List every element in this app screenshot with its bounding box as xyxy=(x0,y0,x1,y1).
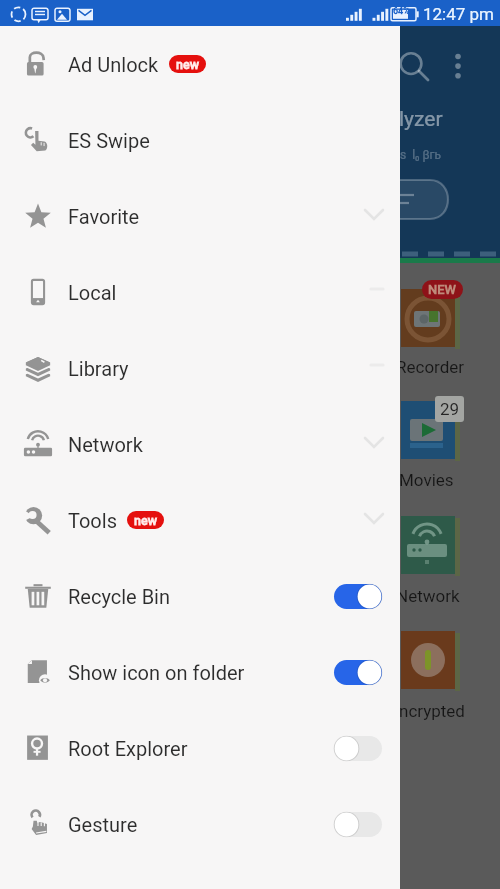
staticText: Show icon on folder xyxy=(68,661,245,684)
staticText: 12:47 pm xyxy=(423,4,495,24)
staticText: new xyxy=(134,513,157,528)
button[interactable]: Network xyxy=(0,406,400,482)
button[interactable]: ES Swipe xyxy=(0,102,400,178)
button[interactable]: Recycle Bin xyxy=(0,558,400,634)
button[interactable]: Root Explorer xyxy=(0,710,400,786)
staticText: Ad Unlock xyxy=(68,53,159,76)
staticText: 64% xyxy=(393,6,410,17)
button[interactable]: Show icon on folder xyxy=(0,634,400,710)
button[interactable]: Tools xyxy=(0,482,400,558)
button[interactable]: Folder xyxy=(401,516,465,580)
staticText: lyzer xyxy=(399,107,443,132)
staticText: Recycle Bin xyxy=(68,585,171,608)
staticText: ncrypted xyxy=(399,701,465,721)
button[interactable]: Ad Unlock xyxy=(0,26,400,102)
button[interactable]: Folder xyxy=(401,289,465,353)
button[interactable]: Favorite xyxy=(0,178,400,254)
staticText: NEW xyxy=(428,282,457,297)
button[interactable]: Gesture xyxy=(334,812,382,837)
button[interactable]: Search xyxy=(396,46,432,82)
staticText: new xyxy=(176,57,199,72)
staticText: Local xyxy=(68,281,117,304)
staticText: Library xyxy=(68,357,129,380)
button[interactable]: Root Explorer xyxy=(334,736,382,761)
button[interactable]: Library xyxy=(0,330,400,406)
button[interactable]: More options xyxy=(444,46,474,84)
staticText: Movies xyxy=(399,470,454,490)
staticText: Tools xyxy=(68,509,117,532)
staticText: Network xyxy=(396,586,460,606)
staticText: Recorder xyxy=(396,357,465,377)
staticText: Gesture xyxy=(68,813,138,836)
staticText: 29 xyxy=(440,399,460,419)
staticText: ES Swipe xyxy=(68,129,150,152)
button[interactable]: Folder xyxy=(401,401,465,465)
staticText: Favorite xyxy=(68,205,140,228)
button[interactable]: Folder xyxy=(401,631,465,695)
staticText: Root Explorer xyxy=(68,737,188,760)
button[interactable]: Gesture xyxy=(0,786,400,862)
button[interactable]: Recycle Bin xyxy=(334,584,382,609)
staticText: s l₀ βгь xyxy=(400,148,442,162)
button[interactable]: Local xyxy=(0,254,400,330)
button[interactable]: Show icon on folder xyxy=(334,660,382,685)
staticText: Network xyxy=(68,433,143,456)
